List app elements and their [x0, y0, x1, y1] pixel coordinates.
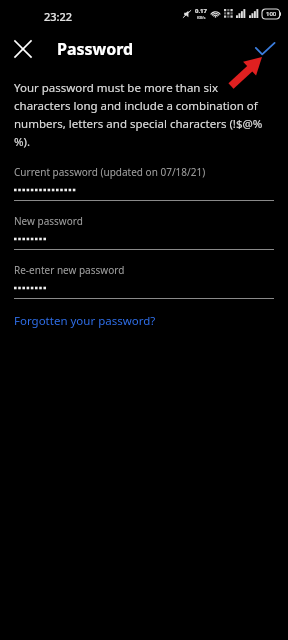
- staticText: Current password (updated on 07/18/21): [14, 165, 206, 179]
- staticText: Forgotten your password?: [14, 313, 156, 329]
- staticText: New password: [14, 214, 83, 228]
- staticText: Re-enter new password: [14, 263, 125, 277]
- button[interactable]: Close: [6, 32, 40, 66]
- staticText: 0.17: [195, 7, 207, 15]
- staticText: 23:22: [44, 9, 73, 24]
- staticText: 100: [266, 10, 277, 18]
- staticText: Password: [57, 38, 134, 60]
- button[interactable]: Re-enter new password: [14, 263, 274, 299]
- staticText: KB/s: [197, 15, 206, 20]
- staticText: Your password must be more than six char…: [14, 80, 274, 149]
- button[interactable]: Save password: [248, 32, 282, 66]
- button[interactable]: Forgotten your password?: [14, 313, 156, 329]
- button[interactable]: Current password (updated on 07/18/21): [14, 165, 274, 201]
- button[interactable]: New password: [14, 214, 274, 250]
